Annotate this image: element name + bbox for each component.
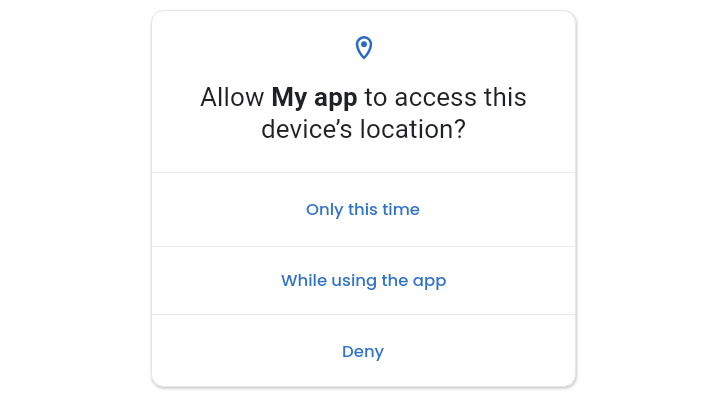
staticText: Deny <box>342 340 385 363</box>
button[interactable]: Deny <box>151 315 576 387</box>
button[interactable]: While using the app <box>151 247 576 314</box>
staticText: Only this time <box>306 198 421 221</box>
button[interactable]: Only this time <box>151 173 576 246</box>
staticText: Allow My app to access this device’s loc… <box>151 82 576 145</box>
staticText: While using the app <box>281 269 447 292</box>
